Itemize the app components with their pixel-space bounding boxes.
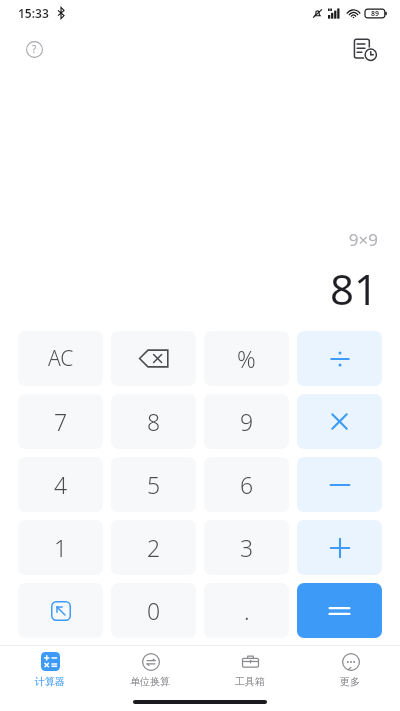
staticText: 2 (147, 532, 161, 563)
staticText: ? (32, 42, 37, 56)
button[interactable]: % (204, 331, 289, 386)
staticText: AC (48, 344, 74, 373)
staticText: 15:33 (18, 5, 49, 21)
staticText: 8 (147, 406, 161, 437)
button[interactable]: Expand (18, 583, 103, 638)
button[interactable]: 6 (204, 457, 289, 512)
staticText: % (237, 343, 256, 374)
button[interactable]: 4 (18, 457, 103, 512)
button[interactable]: 3 (204, 520, 289, 575)
button[interactable]: 5 (111, 457, 196, 512)
button[interactable]: . (204, 583, 289, 638)
staticText: 4 (54, 469, 68, 500)
staticText: 更多 (340, 675, 360, 688)
staticText: 工具箱 (235, 675, 265, 688)
button[interactable]: Plus (297, 520, 382, 575)
button[interactable]: Equals (297, 583, 382, 638)
button[interactable]: 0 (111, 583, 196, 638)
button[interactable]: 工具箱 (200, 646, 300, 692)
button[interactable]: Minus (297, 457, 382, 512)
button[interactable]: 2 (111, 520, 196, 575)
staticText: 9×9 (348, 228, 378, 251)
staticText: 计算器 (35, 675, 65, 688)
button[interactable]: History (348, 32, 382, 66)
button[interactable]: Multiply (297, 394, 382, 449)
staticText: 单位换算 (130, 675, 170, 688)
button[interactable]: Backspace (111, 331, 196, 386)
staticText: 9 (240, 406, 254, 437)
button[interactable]: 更多 (300, 646, 400, 692)
staticText: 7 (54, 406, 68, 437)
button[interactable]: Divide (297, 331, 382, 386)
button[interactable]: AC (18, 331, 103, 386)
button[interactable]: Help (20, 35, 48, 63)
staticText: 0 (147, 595, 161, 626)
button[interactable]: 8 (111, 394, 196, 449)
button[interactable]: 7 (18, 394, 103, 449)
staticText: 1 (54, 532, 68, 563)
staticText: 5 (147, 469, 161, 500)
staticText: 81 (329, 260, 378, 317)
staticText: 89 (371, 9, 380, 19)
staticText: 3 (240, 532, 254, 563)
button[interactable]: 9 (204, 394, 289, 449)
button[interactable]: 1 (18, 520, 103, 575)
button[interactable]: 计算器 (0, 646, 100, 692)
button[interactable]: 单位换算 (100, 646, 200, 692)
staticText: 6 (240, 469, 254, 500)
staticText: . (244, 595, 250, 626)
